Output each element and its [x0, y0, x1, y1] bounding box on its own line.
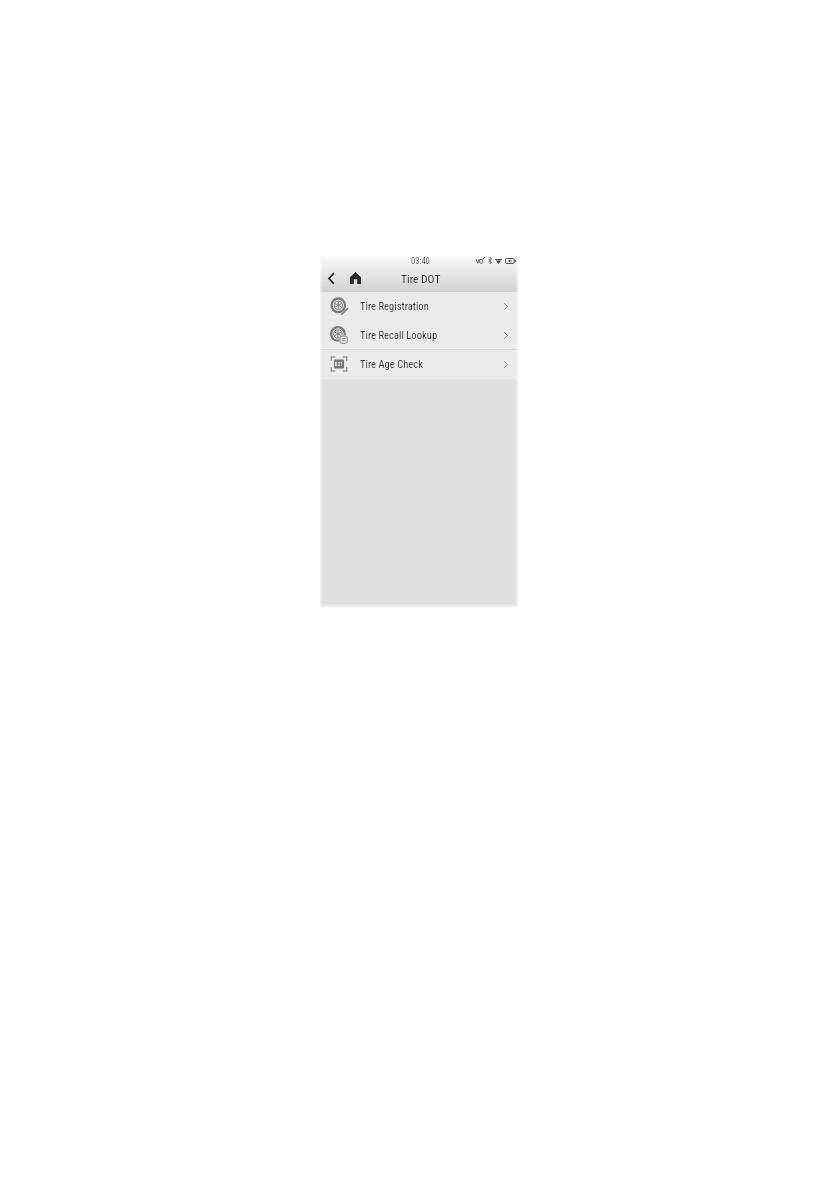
button[interactable]: Tire Registration	[320, 292, 518, 320]
button[interactable]: Tire Age Check	[320, 350, 518, 378]
staticText: Tire Recall Lookup	[360, 329, 438, 341]
staticText: Tire DOT	[401, 272, 441, 285]
staticText: Tire Registration	[360, 300, 429, 312]
button[interactable]: Back	[320, 267, 342, 289]
button[interactable]: Home	[342, 267, 368, 289]
staticText: 03:40	[411, 256, 430, 266]
button[interactable]: Tire Recall Lookup	[320, 321, 518, 349]
staticText: Tire Age Check	[360, 358, 423, 370]
